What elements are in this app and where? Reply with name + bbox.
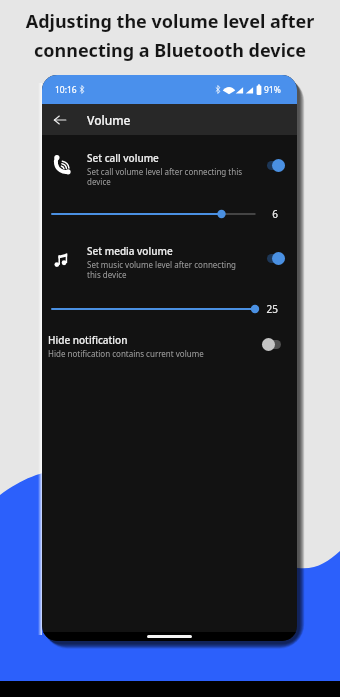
button[interactable]: Toggle media volume xyxy=(267,252,285,265)
staticText: Hide notification xyxy=(48,333,128,347)
button[interactable]: Set call volume xyxy=(42,142,297,195)
button[interactable]: Hide notification xyxy=(42,328,297,362)
button[interactable]: Toggle call volume xyxy=(267,159,285,172)
staticText: Set call volume level after connecting t… xyxy=(87,166,243,187)
staticText: Adjusting the volume level after connect… xyxy=(0,9,340,62)
staticText: Set call volume xyxy=(87,151,159,165)
button[interactable]: Back xyxy=(46,104,74,135)
button[interactable]: Set media volume xyxy=(42,235,297,288)
staticText: Volume xyxy=(87,112,131,128)
staticText: 91% xyxy=(264,84,281,96)
staticText: Hide notification contains current volum… xyxy=(48,348,204,359)
staticText: 25 xyxy=(248,302,278,316)
staticText: 10:16 xyxy=(55,84,77,96)
staticText: 6 xyxy=(248,207,278,221)
staticText: Set music volume level after connecting … xyxy=(87,259,236,280)
button[interactable]: Toggle hide notification xyxy=(262,338,281,351)
staticText: Set media volume xyxy=(87,244,173,258)
